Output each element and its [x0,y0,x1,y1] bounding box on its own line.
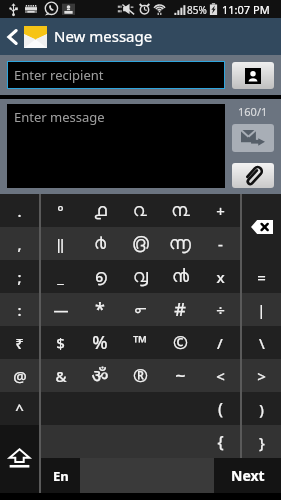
button[interactable]: ~ [160,359,200,392]
staticText: ( [218,398,223,420]
button[interactable]: ° [41,194,80,227]
staticText: ॐ [91,363,109,388]
button[interactable]: Next [214,458,281,493]
button[interactable]: . [0,194,39,227]
button[interactable]: # [160,293,200,326]
button[interactable]: ൨ [120,194,160,227]
staticText: ^ [15,399,24,419]
button[interactable]: = [242,260,281,293]
button[interactable]: : [0,293,39,326]
button[interactable]: x [200,260,240,293]
staticText: , [17,234,22,254]
staticText: ÷ [216,300,225,320]
staticText: > [257,366,266,386]
button[interactable]: ൪ [80,227,120,260]
staticText: ൩ [171,202,190,220]
staticText: . [17,201,22,221]
staticText: ൬ [169,235,191,253]
staticText: New message [54,26,153,46]
staticText: { [217,431,224,453]
staticText: ~ [175,363,186,388]
staticText: 85% [187,3,207,17]
button[interactable]: Enter message [7,104,225,188]
staticText: $ [56,333,65,353]
button[interactable]: @ [0,359,39,392]
staticText: ™ [133,330,147,355]
button[interactable]: ൯ [160,260,200,293]
staticText: % [92,330,108,355]
button[interactable]: © [160,326,200,359]
button[interactable]: & [41,359,80,392]
button[interactable]: ™ [120,326,160,359]
button[interactable]: ₹ [0,326,39,359]
button[interactable]: ൬ [160,227,200,260]
button[interactable]: En [41,458,80,493]
button[interactable]: ൮ [120,260,160,293]
button[interactable]: ^ [0,392,39,425]
staticText: \ [259,333,265,353]
button[interactable]: ® [120,359,160,392]
button[interactable]: — [41,293,80,326]
button[interactable]: Navigate up [0,18,50,55]
staticText: @ [13,366,27,386]
button[interactable]: } [242,425,281,458]
staticText: Enter recipient [14,66,104,84]
button[interactable]: ; [0,260,39,293]
button[interactable]: $ [41,326,80,359]
button[interactable]: - [200,227,240,260]
staticText: ൯ [172,268,189,286]
button[interactable]: Contacts [232,62,274,89]
staticText: En [53,467,69,485]
button[interactable]: Shift [0,425,39,492]
staticText: ൪ [94,235,106,253]
staticText: } [259,432,265,452]
button[interactable]: > [242,359,281,392]
button[interactable]: ॐ [80,359,120,392]
staticText: ൧ [94,202,107,220]
button[interactable]: % [80,326,120,359]
button[interactable]: ൳ [120,293,160,326]
button[interactable]: Send [232,124,274,152]
staticText: ൳ [134,301,146,319]
button[interactable]: _ [41,260,80,293]
button[interactable]: | [242,293,281,326]
staticText: + [216,201,225,221]
button[interactable]: ÷ [200,293,240,326]
button[interactable]: ) [242,392,281,425]
staticText: ₹ [15,333,24,353]
staticText: ; [17,267,22,287]
staticText: = [257,267,266,287]
button[interactable]: ൭ [80,260,120,293]
button[interactable]: , [0,227,39,260]
button[interactable]: / [200,326,240,359]
staticText: ® [133,363,148,388]
staticText: ൮ [133,268,148,286]
button[interactable]: \ [242,326,281,359]
button[interactable]: Attach [232,163,274,188]
staticText: _ [57,267,64,287]
button[interactable]: < [200,359,240,392]
staticText: Enter message [14,108,105,126]
button[interactable]: Delete [242,194,281,260]
staticText: ) [259,399,264,419]
button[interactable]: + [200,194,240,227]
staticText: x [216,267,225,287]
button[interactable]: * [80,293,120,326]
staticText: ‖ [56,234,65,254]
button[interactable]: ൧ [80,194,120,227]
staticText: & [55,366,67,386]
button[interactable]: ൩ [160,194,200,227]
staticText: ൫ [132,235,149,253]
staticText: # [174,297,186,322]
button[interactable]: { [200,425,240,458]
button[interactable]: ( [200,392,240,425]
staticText: ° [57,201,64,221]
staticText: ൭ [94,268,107,286]
button[interactable]: ൫ [120,227,160,260]
button[interactable]: ‖ [41,227,80,260]
button[interactable]: Enter recipient [7,61,225,89]
staticText: / [217,333,223,353]
